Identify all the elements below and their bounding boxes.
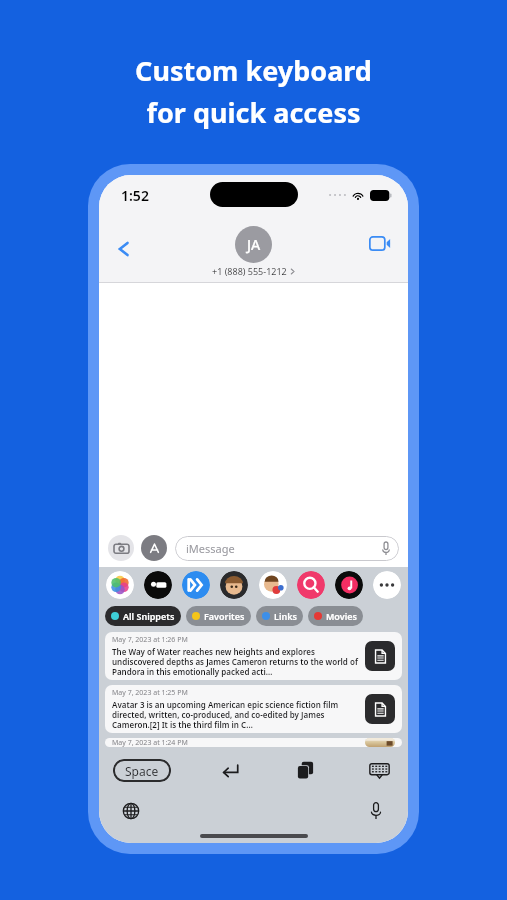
button[interactable]: JA: [212, 226, 295, 277]
staticText: Movies: [326, 610, 357, 622]
staticText: JA: [247, 235, 261, 254]
button[interactable]: Back: [107, 232, 141, 266]
button[interactable]: Keyboard: [364, 755, 394, 785]
staticText: for quick access: [146, 94, 361, 131]
staticText: Custom keyboard: [135, 52, 372, 89]
button[interactable]: Copy: [290, 755, 320, 785]
staticText: Links: [274, 610, 297, 622]
button[interactable]: May 7, 2023 at 1:25 PM: [105, 685, 402, 733]
button[interactable]: Music: [335, 571, 363, 599]
button[interactable]: App Store: [141, 535, 167, 561]
button[interactable]: Camera: [108, 535, 134, 561]
staticText: All Snippets: [123, 610, 175, 622]
button[interactable]: Return: [215, 755, 245, 785]
button[interactable]: Photos: [106, 571, 134, 599]
staticText: Favorites: [204, 610, 245, 622]
staticText: iMessage: [186, 541, 235, 556]
button[interactable]: Space: [113, 759, 171, 782]
button[interactable]: Apple Cash: [144, 571, 172, 599]
button[interactable]: Favorites: [186, 606, 251, 626]
button[interactable]: May 7, 2023 at 1:26 PM: [105, 632, 402, 680]
button[interactable]: Images: [297, 571, 325, 599]
staticText: The Way of Water reaches new heights and…: [112, 646, 359, 677]
button[interactable]: iMessage: [175, 536, 399, 561]
button[interactable]: Digital Touch: [182, 571, 210, 599]
button[interactable]: Links: [256, 606, 303, 626]
staticText: May 7, 2023 at 1:26 PM: [112, 635, 188, 645]
button[interactable]: May 7, 2023 at 1:24 PM: [105, 738, 402, 747]
staticText: 1:52: [121, 186, 149, 205]
button[interactable]: Memoji: [220, 571, 248, 599]
button[interactable]: FaceTime video call: [364, 227, 396, 259]
button[interactable]: Switch keyboard: [117, 797, 145, 825]
button[interactable]: More: [373, 571, 401, 599]
staticText: Avatar 3 is an upcoming American epic sc…: [112, 699, 359, 730]
staticText: May 7, 2023 at 1:24 PM: [112, 738, 188, 747]
button[interactable]: Movies: [308, 606, 363, 626]
button[interactable]: All Snippets: [105, 606, 181, 626]
staticText: +1 (888) 555-1212: [212, 265, 287, 277]
button[interactable]: Dictate: [362, 797, 390, 825]
staticText: Space: [125, 763, 159, 779]
staticText: May 7, 2023 at 1:25 PM: [112, 688, 188, 698]
button[interactable]: Memoji sticker: [259, 571, 287, 599]
